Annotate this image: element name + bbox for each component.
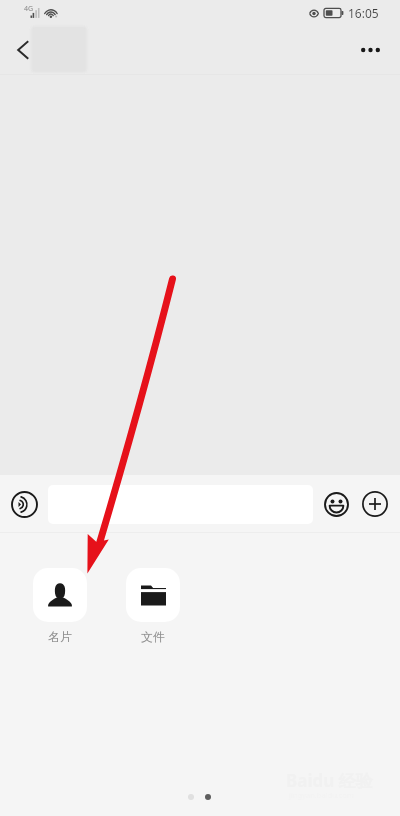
button[interactable]: Message input (48, 485, 313, 524)
button[interactable]: More functions (356, 485, 394, 523)
button[interactable]: 名片 (33, 568, 87, 622)
button[interactable]: Voice input (5, 485, 43, 523)
staticText: 名片 (48, 629, 72, 644)
button[interactable]: Emoji (318, 486, 355, 523)
staticText: 文件 (141, 629, 165, 644)
button[interactable]: Back (5, 25, 39, 75)
button[interactable]: More options (348, 25, 392, 75)
staticText: 16:05 (348, 5, 379, 21)
button[interactable]: 文件 (126, 568, 180, 622)
staticText: 4G (24, 4, 34, 14)
